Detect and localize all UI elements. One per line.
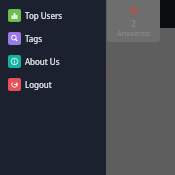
staticText: About Us [25, 56, 60, 67]
button[interactable]: Logout [0, 73, 106, 96]
other: Navigation drawer [0, 0, 106, 175]
button[interactable]: 2 [107, 0, 160, 42]
button[interactable]: About Us [0, 50, 106, 73]
staticText: Tags [25, 33, 43, 44]
staticText: Top Users [25, 10, 63, 21]
button[interactable]: Top Users [0, 4, 106, 27]
staticText: Logout [25, 79, 52, 90]
staticText: Answered [117, 29, 150, 39]
button[interactable]: Tags [0, 27, 106, 50]
staticText: 2 [131, 18, 136, 29]
staticText: rs [104, 66, 111, 76]
